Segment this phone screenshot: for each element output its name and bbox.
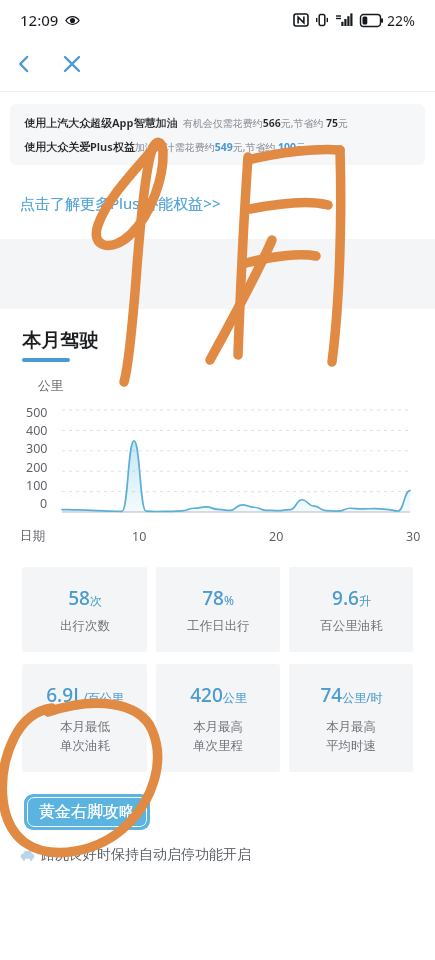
staticText: 出行次数 (60, 618, 110, 634)
button[interactable]: Close (48, 40, 96, 88)
staticText: 黄金右脚攻略 (39, 802, 135, 822)
staticText: 500 (26, 404, 48, 421)
staticText: 300 (26, 440, 48, 457)
staticText: 58次 (68, 585, 102, 611)
staticText: 日期 (20, 528, 45, 544)
staticText: 单次油耗 (60, 738, 110, 754)
button[interactable]: 使用上汽大众超级App智慧加油 有机会仅需花费约566元,节省约 75元 (10, 104, 425, 165)
staticText: 400 (26, 422, 48, 439)
button[interactable]: 420公里 (156, 664, 280, 772)
staticText: 工作日出行 (187, 618, 250, 634)
staticText: 百公里油耗 (320, 618, 383, 634)
staticText: 路况良好时保持自动启停功能开启 (41, 846, 251, 864)
button[interactable]: 黄金右脚攻略 (24, 794, 150, 830)
staticText: 10 (132, 528, 147, 545)
staticText: 22% (387, 11, 415, 30)
staticText: 200 (26, 459, 48, 476)
staticText: 本月最低 (60, 719, 110, 735)
button[interactable]: 78% (156, 567, 280, 652)
staticText: 12:09 (20, 10, 59, 30)
button[interactable]: Back (0, 40, 48, 88)
staticText: 6.9L/百公里 (46, 682, 124, 708)
staticText: 100 (26, 477, 48, 494)
staticText: 本月最高 (326, 719, 376, 735)
staticText: 本月驾驶 (22, 329, 98, 353)
staticText: 9.6升 (332, 585, 371, 611)
button[interactable]: 6.9L/百公里 (22, 664, 147, 772)
button[interactable]: 9.6升 (289, 567, 413, 652)
staticText: 20 (269, 528, 284, 545)
button[interactable]: 路况良好时保持自动启停功能开启 (0, 844, 435, 866)
staticText: 公里 (38, 378, 63, 394)
button[interactable]: 74公里/时 (289, 664, 413, 772)
staticText: 30 (406, 528, 421, 545)
staticText: 74公里/时 (320, 682, 383, 708)
staticText: 本月最高 (193, 719, 243, 735)
staticText: 0 (40, 495, 48, 512)
staticText: 单次里程 (193, 738, 243, 754)
staticText: 78% (202, 585, 234, 611)
staticText: 平均时速 (326, 738, 376, 754)
staticText: 使用上汽大众超级App智慧加油 有机会仅需花费约566元,节省约 75元 (24, 115, 349, 130)
staticText: 420公里 (190, 682, 247, 708)
button[interactable]: 点击了解更多Plus 补能权益>> (0, 191, 435, 215)
button[interactable]: 58次 (22, 567, 147, 652)
staticText: 点击了解更多Plus 补能权益>> (20, 193, 221, 213)
staticText: 使用大众关爱Plus权益加油累计需花费约549元,节省约 100元 (24, 139, 307, 154)
